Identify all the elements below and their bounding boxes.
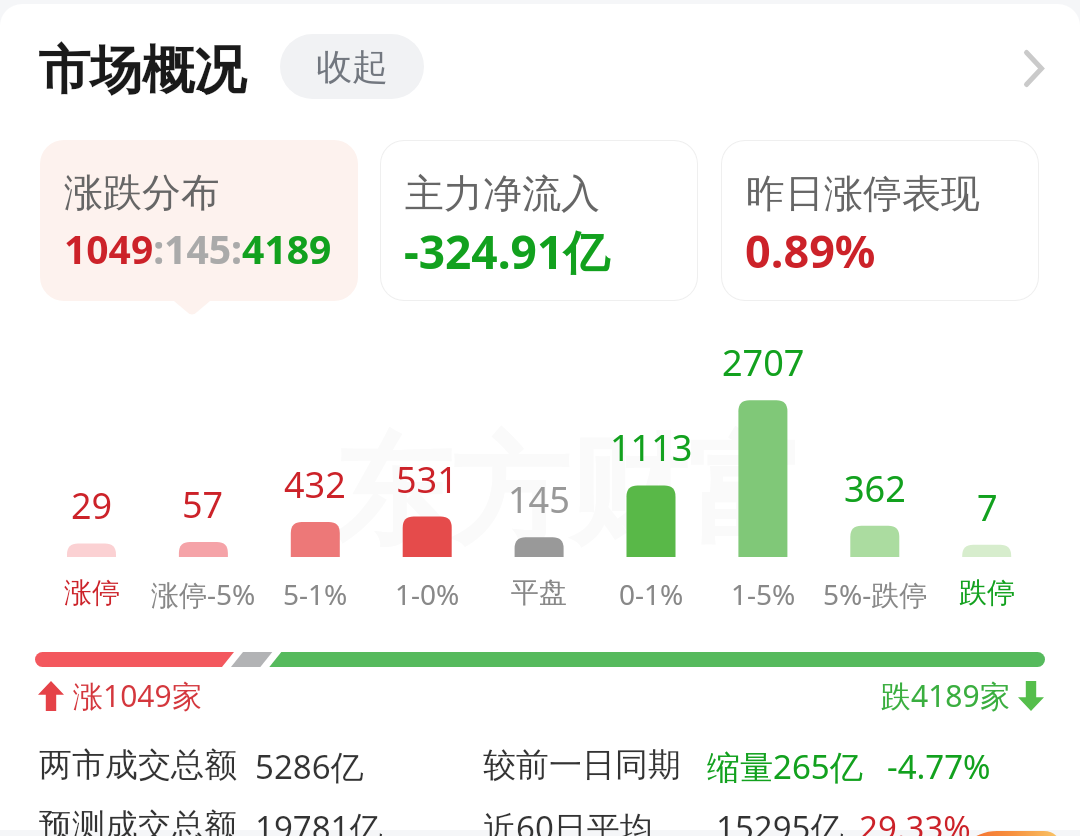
staticText: 两市成交总额	[39, 744, 237, 786]
staticText: 1-0%	[395, 575, 460, 613]
staticText: 预测成交总额	[39, 805, 237, 836]
staticText: -4.77%	[887, 744, 991, 789]
staticText: 1113	[610, 423, 693, 472]
staticText: 主力净流入	[405, 169, 600, 218]
staticText: -324.91亿	[404, 220, 610, 283]
staticText: 57	[182, 480, 224, 529]
staticText: 5-1%	[283, 575, 348, 613]
staticText: 涨1049家	[73, 675, 202, 716]
staticText: 市场概况	[38, 38, 246, 104]
staticText: 涨跌分布	[64, 168, 220, 217]
staticText: 5286亿	[255, 744, 364, 789]
staticText: 0-1%	[619, 575, 684, 613]
staticText: 平盘	[511, 575, 567, 610]
button[interactable]: Assistant	[952, 831, 1062, 836]
staticText: 5%-跌停	[823, 575, 928, 613]
staticText: 19781亿	[255, 805, 383, 836]
button[interactable]: 涨跌分布	[40, 140, 358, 301]
staticText: 收起	[316, 44, 388, 89]
button[interactable]: Expand market overview	[1002, 36, 1066, 100]
staticText: 145	[508, 475, 570, 524]
staticText: 跌4189家	[881, 675, 1010, 716]
staticText: 跌停	[959, 575, 1015, 610]
staticText: 近60日平均	[483, 805, 653, 836]
button[interactable]: 主力净流入	[381, 141, 697, 300]
staticText: 432	[284, 460, 346, 509]
staticText: 1049:145:4189	[64, 222, 332, 275]
staticText: 0.89%	[745, 220, 876, 281]
staticText: 29.33%	[859, 805, 971, 836]
button[interactable]: 收起	[280, 34, 424, 99]
staticText: 昨日涨停表现	[746, 169, 980, 218]
staticText: 1-5%	[731, 575, 796, 613]
button[interactable]: 昨日涨停表现	[722, 141, 1038, 300]
staticText: 涨停	[64, 575, 120, 610]
staticText: 15295亿	[716, 805, 844, 836]
staticText: 362	[844, 464, 906, 513]
staticText: 29	[71, 481, 113, 530]
staticText: 涨停-5%	[151, 575, 256, 613]
staticText: 缩量265亿	[707, 744, 863, 789]
staticText: 较前一日同期	[483, 744, 681, 786]
staticText: 东方财富	[333, 418, 805, 567]
staticText: 7	[977, 483, 998, 532]
staticText: 2707	[722, 338, 805, 387]
staticText: 531	[396, 455, 458, 504]
